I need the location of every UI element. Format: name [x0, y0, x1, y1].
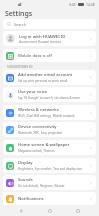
staticText: Use your voice — [18, 89, 48, 95]
button[interactable]: Use your voice — [3, 87, 96, 102]
button[interactable]: Recent apps — [71, 206, 85, 216]
button[interactable]: Wireless & networks — [3, 105, 96, 120]
button[interactable]: Search — [3, 19, 96, 29]
button[interactable]: Display — [3, 158, 96, 173]
staticText: Bluetooth, NFC, Easy projection — [18, 131, 63, 135]
button[interactable]: Back — [14, 206, 28, 216]
staticText: Home screen & wallpaper — [18, 142, 70, 148]
staticText: Mobile data is off — [18, 53, 52, 59]
staticText: Set up your personal or work email — [18, 79, 68, 83]
staticText: Say 'Hi Google' to search, set alarms & … — [18, 96, 81, 100]
button[interactable]: Sounds — [3, 175, 96, 190]
staticText: Notifications — [18, 196, 44, 202]
button[interactable]: Device connectivity — [3, 122, 96, 137]
staticText: SUGGESTIONS (3) — [7, 65, 33, 69]
staticText: Search — [14, 22, 27, 27]
button[interactable]: Dismiss suggestion — [88, 92, 93, 97]
staticText: Wireless & networks — [18, 107, 59, 113]
staticText: 9:45 — [69, 2, 76, 7]
staticText: Magazine unlock, Themes — [18, 149, 55, 153]
button[interactable]: Home screen & wallpaper — [3, 140, 96, 155]
staticText: Add another email account — [18, 72, 73, 78]
staticText: Log in with HUAWEI ID — [19, 33, 66, 39]
staticText: Sounds — [18, 177, 33, 183]
staticText: 14:48 — [86, 2, 95, 7]
staticText: Wi-Fi, Dual SIM settings, Mobile network — [18, 114, 75, 118]
staticText: Settings — [5, 9, 33, 19]
staticText: Device connectivity — [18, 124, 57, 130]
button[interactable]: Add another email account — [3, 70, 96, 85]
staticText: Access more Huawei services — [19, 40, 62, 44]
button[interactable]: Dismiss suggestion — [88, 75, 93, 80]
button[interactable]: Notifications — [3, 192, 96, 205]
staticText: Do not disturb, Ringtone, Vibrate — [18, 184, 65, 188]
staticText: Display — [18, 160, 33, 166]
staticText: Brightness, Eye comfort, Text and displa… — [18, 167, 82, 171]
button[interactable]: Home — [43, 206, 57, 216]
button[interactable]: Log in with HUAWEI ID — [3, 31, 96, 46]
